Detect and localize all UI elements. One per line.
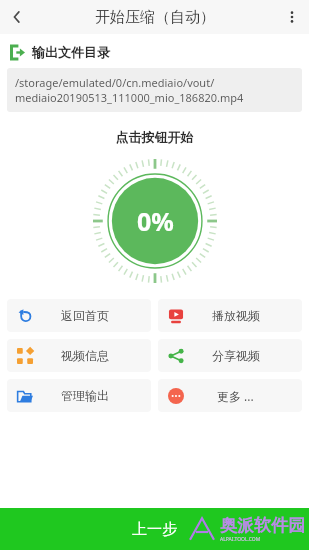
staticText: 奥派软件园	[220, 515, 305, 536]
staticText: 开始压缩（自动）	[95, 8, 215, 27]
button[interactable]: Start compression	[92, 158, 218, 284]
staticText: /storage/emulated/0/cn.mediaio/vout/ med…	[15, 75, 244, 105]
button[interactable]: Back	[0, 0, 34, 34]
button[interactable]: 返回首页	[7, 299, 151, 332]
staticText: 播放视频	[212, 308, 260, 323]
button[interactable]: 更多 ...	[158, 379, 302, 412]
staticText: 分享视频	[212, 348, 260, 363]
staticText: ALPAI.TOOL.COM	[220, 536, 261, 543]
button[interactable]: 分享视频	[158, 339, 302, 372]
staticText: 上一步	[132, 520, 177, 539]
button[interactable]: 管理输出	[7, 379, 151, 412]
button[interactable]: 上一步	[0, 508, 309, 550]
staticText: 视频信息	[61, 348, 109, 363]
staticText: 返回首页	[61, 308, 109, 323]
staticText: 更多 ...	[217, 388, 254, 404]
staticText: 管理输出	[61, 388, 109, 403]
button[interactable]: 视频信息	[7, 339, 151, 372]
button[interactable]: 播放视频	[158, 299, 302, 332]
staticText: 0%	[137, 204, 174, 238]
button[interactable]: More options	[275, 0, 309, 34]
staticText: 输出文件目录	[32, 44, 110, 60]
staticText: 点击按钮开始	[0, 129, 309, 145]
